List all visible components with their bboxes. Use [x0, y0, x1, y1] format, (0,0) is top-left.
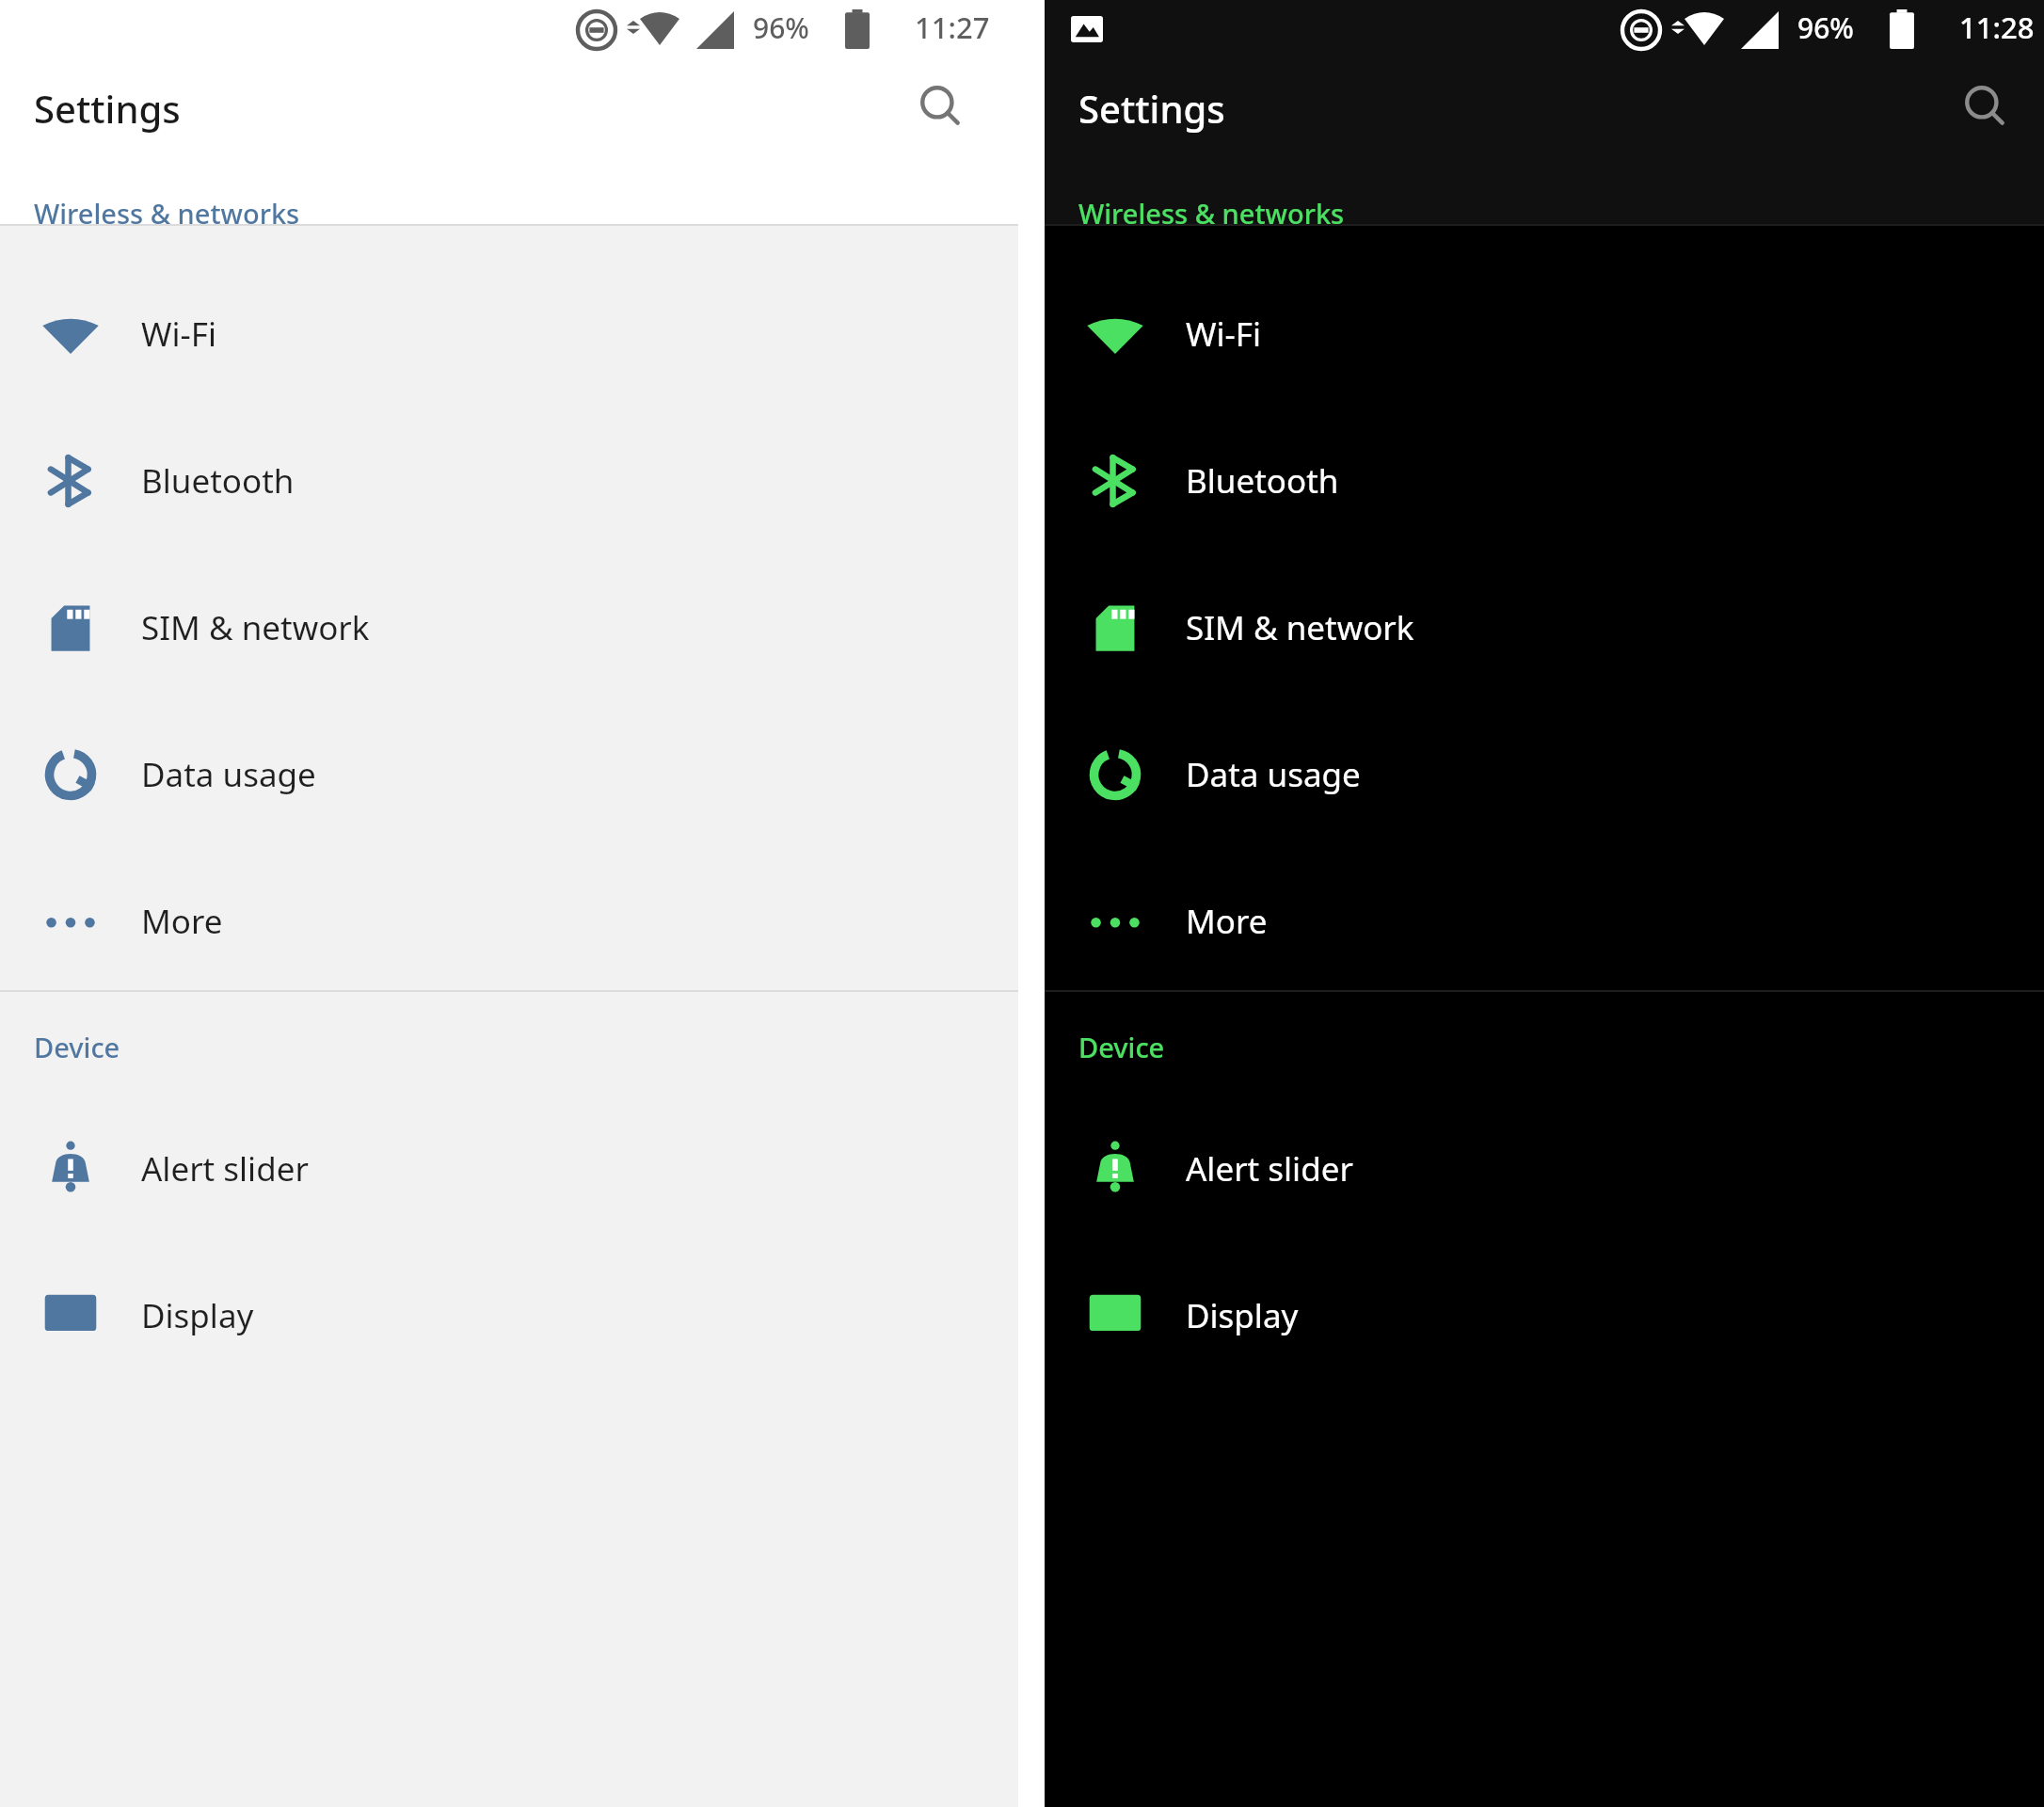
staticText: Display [1186, 1293, 1299, 1338]
staticText: 11:28 [1959, 8, 2035, 47]
staticText: 96% [753, 8, 809, 47]
button[interactable]: Bluetooth [1045, 408, 2044, 554]
staticText: Settings [34, 83, 181, 134]
staticText: Display [141, 1293, 254, 1338]
button[interactable]: More [1045, 848, 2044, 995]
button[interactable]: Search settings [896, 62, 986, 152]
button[interactable]: Display [0, 1242, 1018, 1389]
staticText: Bluetooth [141, 458, 295, 504]
button[interactable]: Wi-Fi [0, 261, 1018, 408]
staticText: 11:27 [915, 8, 990, 47]
button[interactable]: Display [1045, 1242, 2044, 1389]
staticText: Bluetooth [1186, 458, 1339, 504]
staticText: Device [34, 1029, 120, 1065]
staticText: More [141, 899, 223, 944]
staticText: Wi-Fi [1186, 312, 1262, 357]
button[interactable]: SIM & network [1045, 554, 2044, 701]
staticText: Device [1078, 1029, 1165, 1065]
button[interactable]: Wi-Fi [1045, 261, 2044, 408]
button[interactable]: More [0, 848, 1018, 995]
staticText: Wi-Fi [141, 312, 217, 357]
staticText: 96% [1797, 8, 1854, 47]
staticText: SIM & network [1186, 605, 1414, 650]
button[interactable]: SIM & network [0, 554, 1018, 701]
staticText: Wireless & networks [34, 195, 300, 232]
staticText: Alert slider [1186, 1146, 1353, 1191]
button[interactable]: Alert slider [1045, 1095, 2044, 1242]
staticText: Wireless & networks [1078, 195, 1345, 232]
staticText: Data usage [1186, 752, 1361, 797]
button[interactable]: Bluetooth [0, 408, 1018, 554]
staticText: SIM & network [141, 605, 370, 650]
staticText: Settings [1078, 83, 1225, 134]
staticText: Data usage [141, 752, 316, 797]
button[interactable]: Data usage [1045, 701, 2044, 848]
staticText: More [1186, 899, 1268, 944]
button[interactable]: Search settings [1940, 62, 2031, 152]
button[interactable]: Data usage [0, 701, 1018, 848]
button[interactable]: Alert slider [0, 1095, 1018, 1242]
staticText: Alert slider [141, 1146, 309, 1191]
